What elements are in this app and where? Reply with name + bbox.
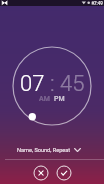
button[interactable]: AM: [39, 95, 50, 103]
button[interactable]: Cancel: [32, 164, 50, 182]
button[interactable]: PM: [54, 95, 65, 103]
button[interactable]: Save alarm: [55, 164, 73, 182]
button[interactable]: Name, Sound, Repeat: [0, 143, 104, 157]
button[interactable]: 07: [20, 71, 45, 97]
button[interactable]: 45: [60, 71, 85, 97]
staticText: :: [50, 71, 55, 97]
staticText: 7:49: [94, 1, 103, 6]
staticText: Name, Sound, Repeat: [17, 147, 71, 154]
